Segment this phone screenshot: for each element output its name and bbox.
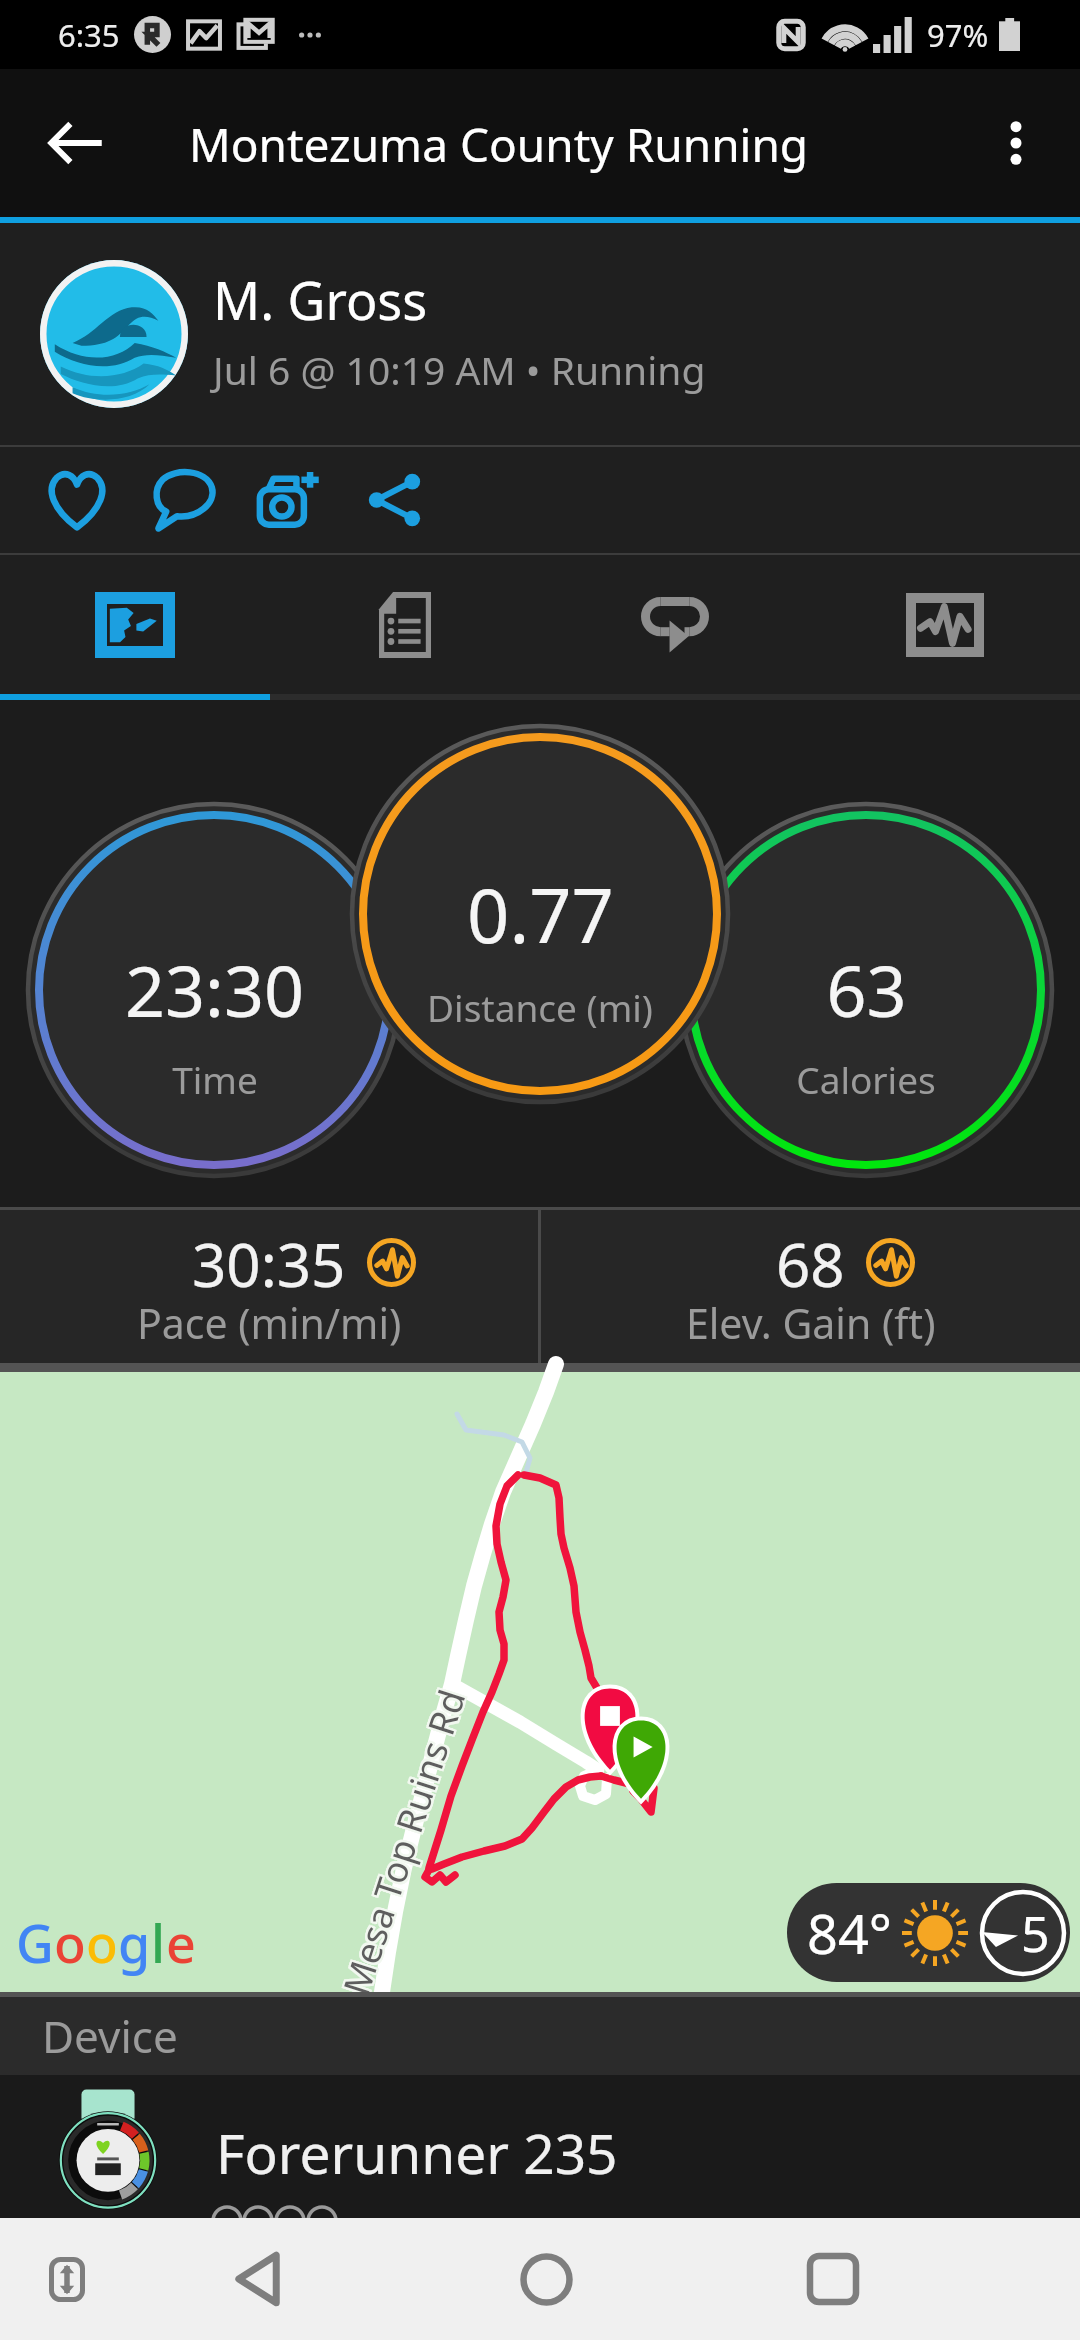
button[interactable]: Calories 63 (677, 801, 1055, 1179)
button[interactable]: Distance 0.77 mi (349, 723, 731, 1105)
staticText: o (86, 1907, 118, 1978)
button[interactable]: Recent apps (773, 2218, 893, 2340)
button[interactable]: More options (966, 93, 1066, 193)
staticText: Jul 6 @ 10:19 AM • Running (213, 343, 706, 396)
staticText: Pace (min/mi) (137, 1295, 402, 1351)
staticText: Mesa Top Ruins Rd (331, 1683, 476, 2001)
staticText: Elev. Gain (ft) (686, 1295, 936, 1351)
staticText: g (118, 1907, 151, 1978)
staticText: o (54, 1907, 86, 1978)
staticText: Forerunner 235 (216, 2115, 618, 2190)
staticText: Calories (796, 1054, 936, 1104)
button[interactable]: Like (24, 447, 130, 553)
staticText: Mesa Top Ruins Rd (329, 1685, 474, 2002)
staticText: 0.77 (467, 864, 614, 965)
staticText: e (166, 1907, 196, 1978)
staticText: Mesa Top Ruins Rd (333, 1684, 478, 2002)
staticText: Mesa Top Ruins Rd (330, 1681, 475, 1998)
staticText: Mesa Top Ruins Rd (331, 1685, 476, 2003)
button[interactable]: Back (198, 2218, 318, 2340)
staticText: G (16, 1907, 54, 1978)
button[interactable]: Home (486, 2218, 606, 2340)
staticText: 5 (1021, 1899, 1050, 1967)
staticText: Mesa Top Ruins Rd (329, 1683, 474, 2000)
staticText: 30:35 (192, 1223, 346, 1305)
staticText: M. Gross (213, 264, 428, 335)
staticText: Montezuma County Running (189, 113, 809, 176)
button[interactable]: Charts (810, 555, 1080, 694)
button[interactable]: Pace (min/mi) 30:35 (0, 1207, 538, 1363)
staticText: Device (42, 2006, 178, 2066)
staticText: 84° (807, 1896, 892, 1970)
staticText: Mesa Top Ruins Rd (334, 1682, 479, 2000)
button[interactable]: Time 23:30 (25, 801, 403, 1179)
button[interactable]: Comment (130, 447, 236, 553)
button[interactable]: Details (270, 555, 540, 694)
staticText: 68 (776, 1223, 845, 1305)
staticText: 6:35 (58, 14, 120, 56)
staticText: 63 (826, 942, 907, 1037)
button[interactable]: Share (342, 447, 448, 553)
button[interactable]: Weather 84 degrees (787, 1883, 1070, 1982)
button[interactable]: Laps (540, 555, 810, 694)
button[interactable]: Navigate up (26, 93, 126, 193)
button[interactable]: Forerunner 235 (0, 2075, 1080, 2218)
button[interactable]: Activity map (0, 1372, 1080, 1992)
button[interactable]: Add photo (236, 447, 342, 553)
staticText: 23:30 (125, 942, 304, 1037)
staticText: Mesa Top Ruins Rd (332, 1681, 477, 1999)
button[interactable]: Map (0, 555, 270, 694)
button[interactable]: M. Gross (0, 223, 1080, 445)
button[interactable]: Hide keyboard (17, 2218, 117, 2340)
staticText: Time (172, 1054, 258, 1104)
staticText: Distance (mi) (427, 982, 653, 1032)
staticText: l (151, 1907, 166, 1978)
button[interactable]: Elev. Gain (ft) 68 (541, 1207, 1080, 1363)
staticText: Mesa Top Ruins Rd (333, 1686, 478, 2003)
staticText: 97% (927, 14, 989, 56)
